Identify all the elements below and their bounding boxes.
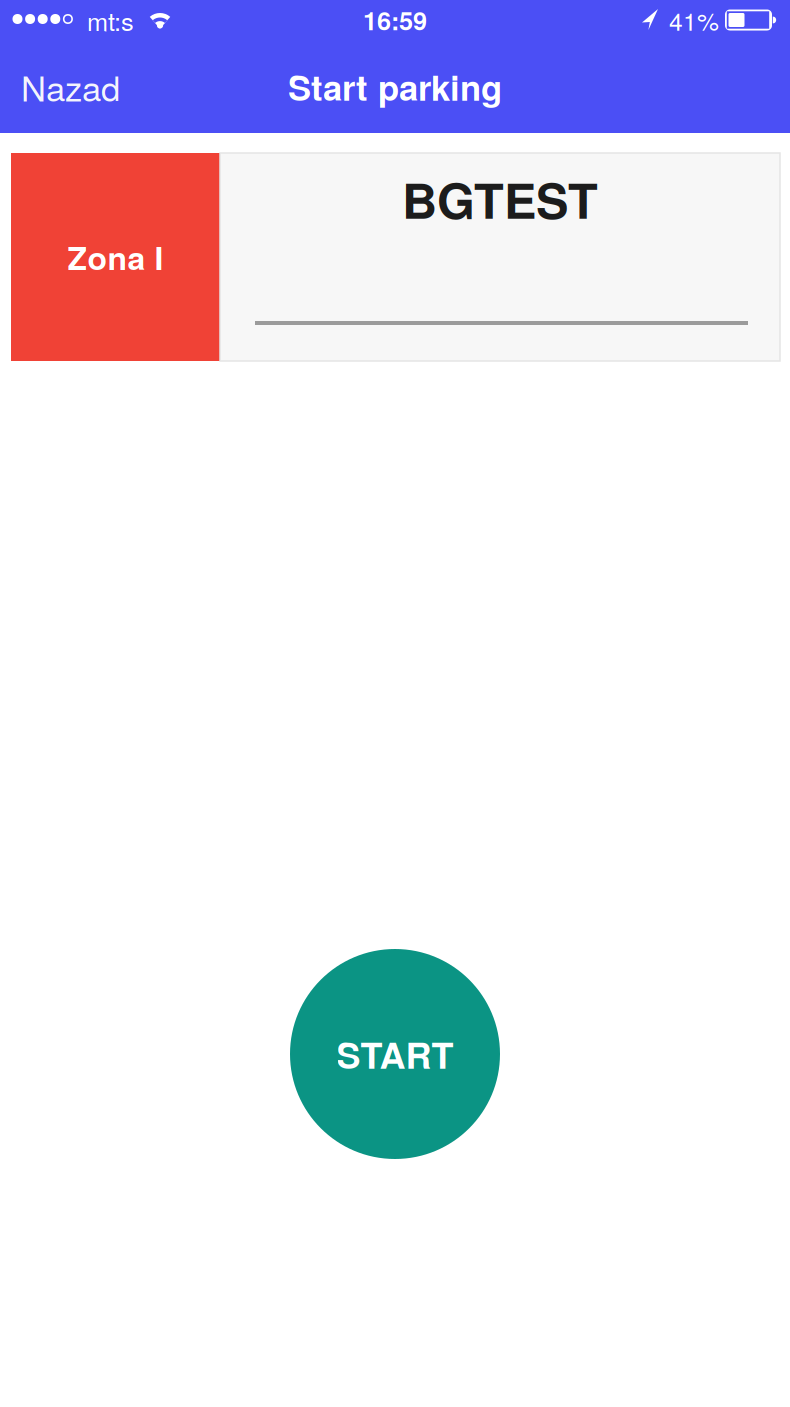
staticText: mt:s: [87, 2, 134, 38]
button[interactable]: Nazad: [0, 38, 120, 135]
staticText: START: [336, 1028, 453, 1080]
staticText: Zona I: [67, 234, 163, 280]
button[interactable]: Registration plate BGTEST: [220, 153, 780, 361]
staticText: 41%: [669, 2, 719, 38]
staticText: BGTEST: [402, 164, 598, 234]
staticText: Nazad: [21, 62, 120, 111]
staticText: 16:59: [363, 2, 427, 38]
button[interactable]: Zona I: [11, 153, 220, 361]
staticText: Start parking: [288, 62, 502, 111]
button[interactable]: START: [290, 949, 500, 1159]
